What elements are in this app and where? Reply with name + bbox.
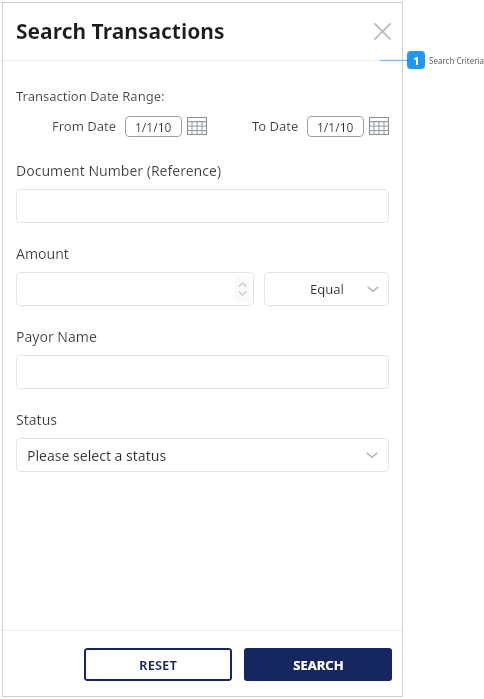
button[interactable]: Open calendar for To Date (368, 115, 389, 137)
staticText: To Date (252, 117, 299, 135)
button[interactable]: 1/1/10 (307, 116, 364, 137)
button[interactable]: SEARCH (244, 648, 392, 681)
button[interactable]: Close (368, 17, 396, 45)
button[interactable]: 1/1/10 (125, 116, 182, 137)
staticText: From Date (52, 117, 117, 135)
button[interactable]: RESET (84, 648, 232, 681)
staticText: RESET (139, 656, 177, 674)
staticText: 1 (413, 53, 420, 68)
button[interactable] (16, 272, 254, 306)
staticText: 1/1/10 (317, 119, 354, 135)
staticText: Please select a status (27, 446, 167, 465)
staticText: Document Number (Reference) (16, 161, 222, 180)
staticText: SEARCH (293, 656, 344, 674)
staticText: Transaction Date Range: (16, 87, 165, 105)
staticText: Equal (310, 280, 344, 298)
staticText: Amount (16, 244, 69, 263)
button[interactable] (16, 189, 389, 223)
button[interactable]: Please select a status (16, 438, 389, 472)
button[interactable] (16, 355, 389, 389)
staticText: Status (16, 410, 58, 429)
staticText: Search Criteria (429, 55, 484, 66)
staticText: Search Transactions (16, 17, 225, 46)
button[interactable]: Open calendar for From Date (186, 115, 208, 137)
staticText: Payor Name (16, 327, 97, 346)
button[interactable]: Equal (264, 272, 389, 306)
staticText: 1/1/10 (135, 119, 172, 135)
